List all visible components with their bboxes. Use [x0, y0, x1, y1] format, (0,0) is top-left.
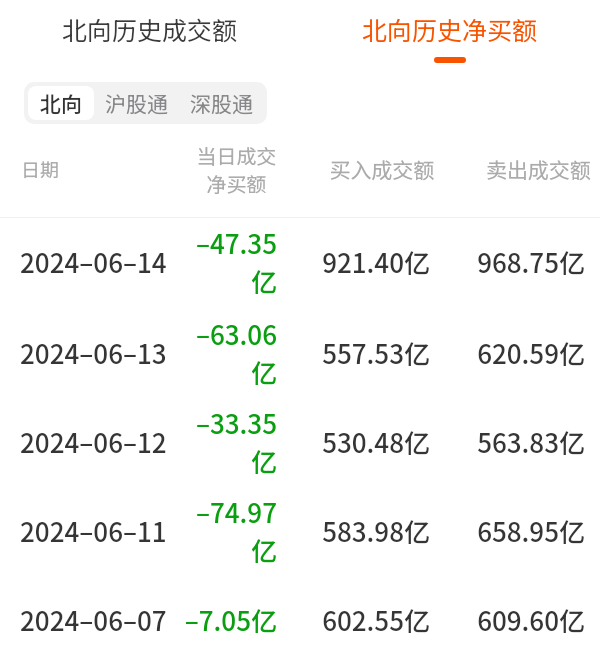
staticText: 620.59亿	[430, 334, 585, 372]
button[interactable]: 2024–06–07	[0, 575, 600, 658]
staticText: –33.35亿	[170, 404, 277, 480]
staticText: 北向历史成交额	[62, 11, 238, 47]
staticText: 602.55亿	[277, 601, 430, 639]
button[interactable]: 深股通	[179, 86, 263, 120]
staticText: 2024–06–14	[20, 243, 170, 281]
button[interactable]: 2024–06–11	[0, 486, 600, 575]
staticText: 2024–06–07	[20, 601, 170, 639]
staticText: 2024–06–12	[20, 423, 170, 461]
button[interactable]: 2024–06–14	[0, 216, 600, 308]
staticText: –47.35亿	[170, 224, 277, 300]
staticText: 北向历史净买额	[362, 11, 538, 47]
button[interactable]: 北向历史净买额	[300, 0, 600, 70]
staticText: 买入成交额	[303, 154, 461, 184]
staticText: 北向	[40, 88, 82, 118]
staticText: 沪股通	[105, 88, 168, 118]
staticText: 609.60亿	[430, 601, 585, 639]
button[interactable]: 北向	[28, 86, 94, 120]
button[interactable]: 2024–06–13	[0, 308, 600, 397]
button[interactable]: 北向历史成交额	[0, 0, 300, 70]
staticText: 当日成交 净买额	[170, 141, 303, 198]
staticText: 2024–06–13	[20, 334, 170, 372]
staticText: 日期	[21, 155, 60, 183]
staticText: 563.83亿	[430, 423, 585, 461]
staticText: 557.53亿	[277, 334, 430, 372]
staticText: 658.95亿	[430, 512, 585, 550]
staticText: 卖出成交额	[461, 154, 600, 184]
staticText: –74.97亿	[170, 493, 277, 569]
staticText: 968.75亿	[430, 243, 585, 281]
staticText: 2024–06–11	[20, 512, 170, 550]
staticText: –7.05亿	[170, 601, 277, 639]
button[interactable]: 2024–06–12	[0, 397, 600, 486]
staticText: 深股通	[190, 88, 253, 118]
staticText: 530.48亿	[277, 423, 430, 461]
staticText: 921.40亿	[277, 243, 430, 281]
button[interactable]: 沪股通	[94, 86, 179, 120]
staticText: –63.06亿	[170, 315, 277, 391]
staticText: 583.98亿	[277, 512, 430, 550]
